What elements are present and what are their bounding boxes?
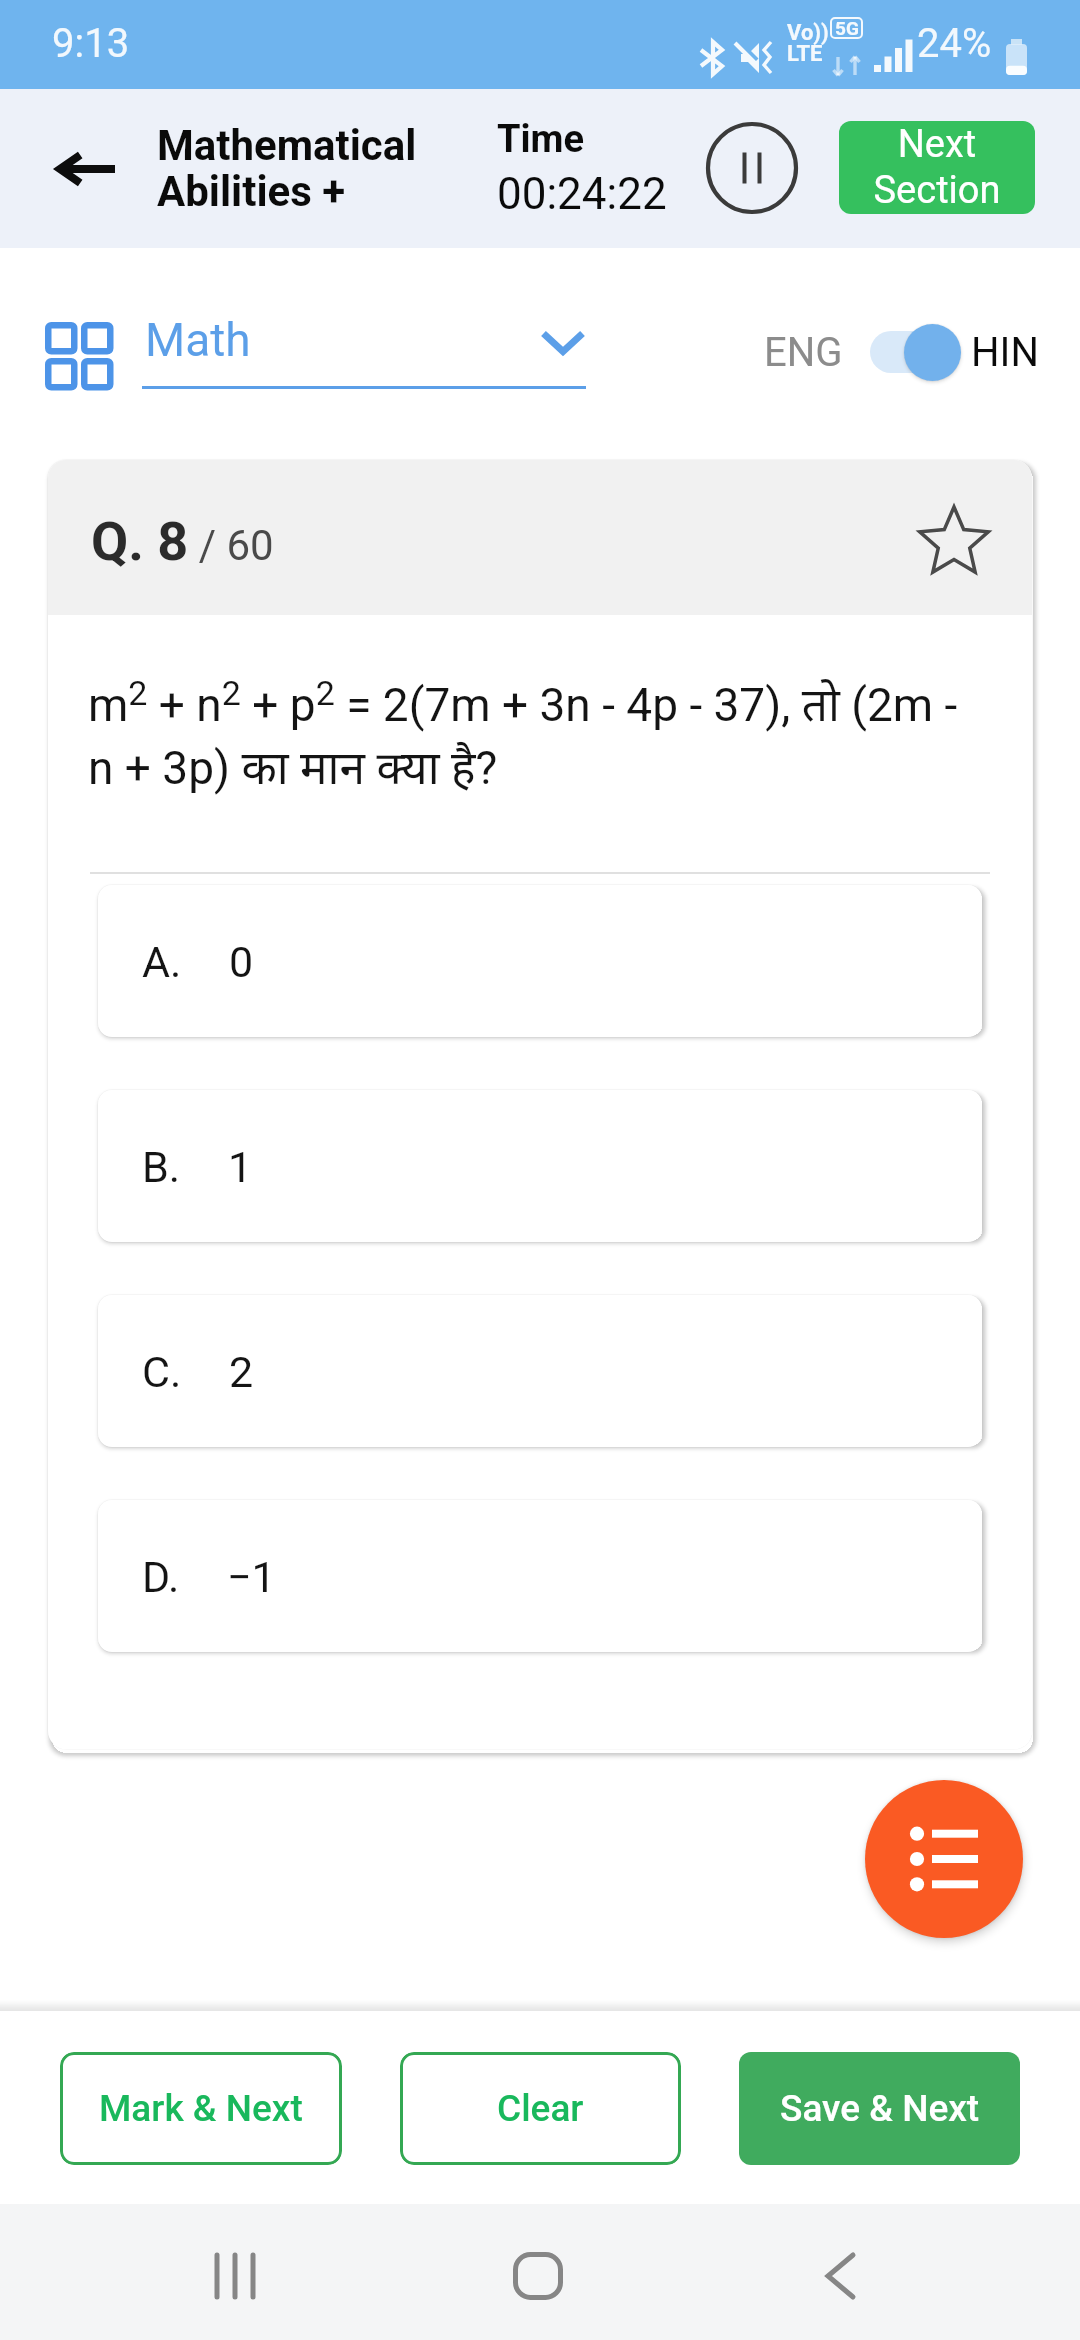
staticText: 2	[229, 1347, 254, 1397]
staticText: Mathematical Abilities +	[157, 121, 417, 217]
staticText: Save & Next	[780, 2087, 980, 2130]
staticText: ENG	[764, 329, 843, 376]
staticText: 24%	[917, 20, 992, 67]
staticText: 1	[228, 1142, 253, 1192]
staticText: Next Section	[839, 122, 1035, 213]
button[interactable]: A.	[98, 885, 982, 1037]
button[interactable]: Back	[781, 2221, 901, 2331]
staticText: 9:13	[52, 20, 130, 67]
button[interactable]: Recent apps	[175, 2221, 295, 2331]
staticText: A.	[142, 937, 182, 987]
staticText: m2 + n2 + p2 = 2(7m + 3n - 4p - 37), तो …	[88, 672, 958, 798]
staticText: 5G	[835, 17, 859, 39]
staticText: −1	[227, 1552, 276, 1602]
button[interactable]: Question palette	[31, 308, 121, 398]
button[interactable]: Pause timer	[702, 118, 802, 218]
button[interactable]: Clear	[400, 2052, 681, 2165]
staticText: HIN	[971, 329, 1039, 376]
staticText: LTE	[787, 41, 823, 67]
staticText: Math	[145, 313, 251, 367]
button[interactable]: D.	[98, 1500, 982, 1652]
button[interactable]: Back	[30, 113, 142, 225]
button[interactable]: Bookmark question	[908, 495, 1000, 587]
staticText: Vo))	[787, 20, 829, 46]
staticText: 00:24:22	[497, 168, 667, 220]
staticText: Time	[497, 117, 585, 162]
button[interactable]: C.	[98, 1295, 982, 1447]
button[interactable]: Math	[142, 297, 586, 407]
button[interactable]: B.	[98, 1090, 982, 1242]
staticText: D.	[142, 1552, 180, 1602]
button[interactable]: ENG	[764, 322, 1039, 382]
button[interactable]: Question list	[865, 1780, 1023, 1938]
staticText: Q. 8 / 60	[91, 510, 274, 573]
button[interactable]: Mark & Next	[60, 2052, 342, 2165]
staticText: B.	[142, 1142, 181, 1192]
button[interactable]: Save & Next	[739, 2052, 1020, 2165]
staticText: 0	[229, 937, 254, 987]
button[interactable]: Home	[478, 2221, 598, 2331]
staticText: Clear	[497, 2087, 584, 2130]
staticText: Mark & Next	[99, 2087, 303, 2130]
staticText: C.	[142, 1347, 182, 1397]
button[interactable]: Next Section	[839, 121, 1035, 214]
